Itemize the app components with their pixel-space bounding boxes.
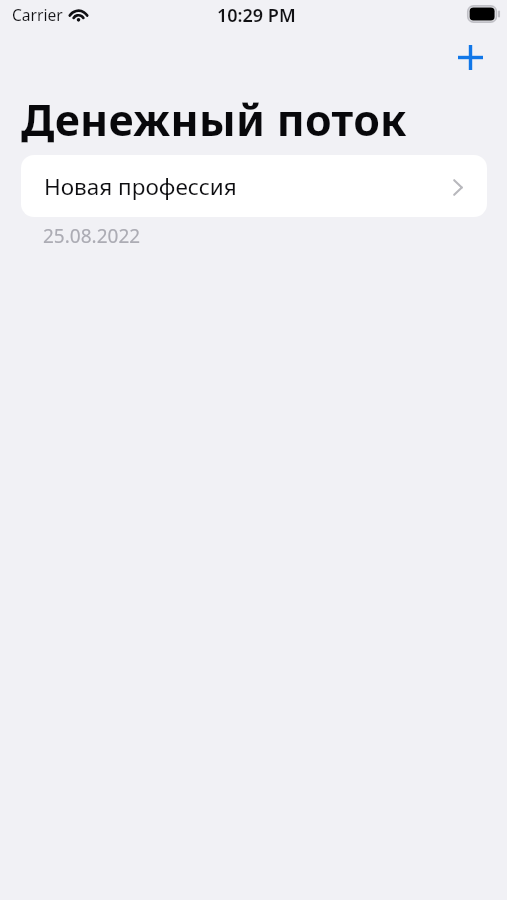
button[interactable]: Новая профессия: [21, 155, 487, 217]
staticText: Денежный поток: [21, 90, 407, 149]
staticText: 10:29 PM: [217, 3, 296, 28]
button[interactable]: Add: [448, 35, 492, 79]
staticText: 25.08.2022: [43, 223, 141, 249]
staticText: Carrier: [12, 4, 63, 25]
staticText: Новая профессия: [44, 171, 237, 202]
